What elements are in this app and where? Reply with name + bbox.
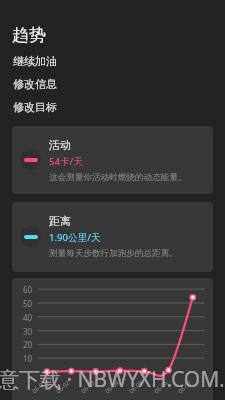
staticText: 50	[23, 298, 33, 309]
staticText: 06-01	[30, 379, 48, 395]
button[interactable]: 活动	[12, 126, 213, 194]
staticText: 活动	[49, 138, 71, 152]
staticText: 修改信息	[13, 77, 57, 91]
staticText: 06-03	[79, 379, 97, 395]
staticText: 06-06	[152, 379, 170, 395]
staticText: 30	[23, 326, 33, 337]
staticText: 距离	[49, 214, 71, 228]
staticText: 06-02	[54, 379, 72, 395]
staticText: 60	[23, 284, 33, 295]
staticText: 趋势	[12, 25, 46, 46]
staticText: 06-07	[176, 379, 194, 395]
staticText: 意下载 · NBWYXH.COM.CN	[0, 365, 223, 394]
button[interactable]: 修改目标	[0, 97, 225, 117]
staticText: 20	[23, 339, 33, 350]
staticText: 测量每天步数行加跑步的总距离。	[49, 248, 178, 259]
button[interactable]: 继续加油	[0, 51, 225, 71]
staticText: 这会测量你活动时燃烧的动态能量。	[49, 172, 187, 183]
staticText: 40	[23, 312, 33, 323]
staticText: 06-04	[103, 379, 121, 395]
button[interactable]: 修改信息	[0, 74, 225, 94]
staticText: 10	[23, 353, 33, 364]
staticText: 继续加油	[13, 54, 57, 68]
staticText: 1.90公里/天	[49, 231, 101, 244]
staticText: 54卡/天	[49, 155, 83, 168]
staticText: 06-05	[127, 379, 145, 395]
button[interactable]: 距离	[12, 202, 213, 272]
staticText: 修改目标	[13, 100, 57, 114]
